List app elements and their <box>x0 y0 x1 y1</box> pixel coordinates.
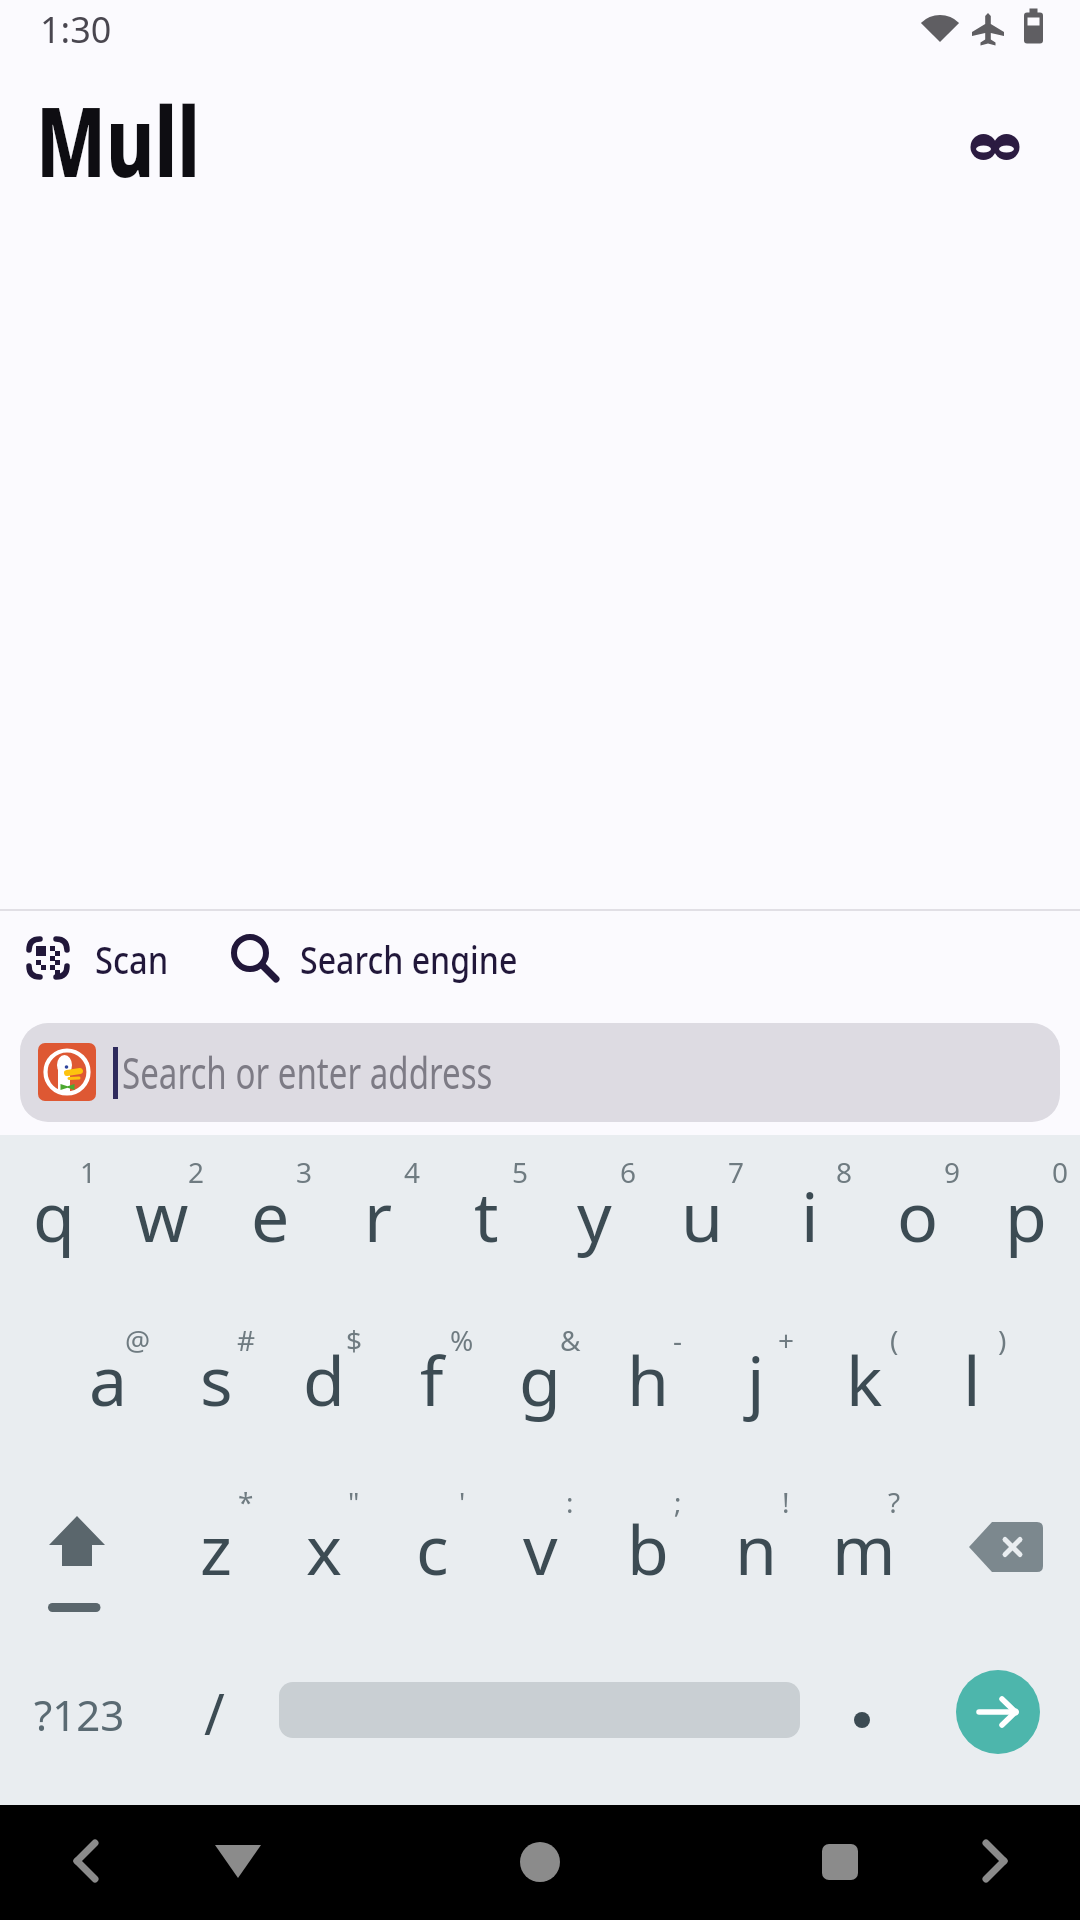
button[interactable] <box>955 1822 1035 1902</box>
staticText: % <box>450 1321 474 1359</box>
staticText: 3 <box>296 1153 313 1191</box>
button[interactable] <box>215 920 535 1000</box>
staticText: j <box>747 1333 765 1426</box>
staticText: & <box>560 1321 581 1359</box>
staticText: 8 <box>836 1153 853 1191</box>
staticText: " <box>348 1483 360 1521</box>
staticText: 9 <box>944 1153 961 1191</box>
staticText: o <box>897 1169 939 1262</box>
staticText: $ <box>346 1321 363 1359</box>
button[interactable]: y <box>540 1133 648 1297</box>
button[interactable]: ?123 <box>0 1654 159 1774</box>
staticText: r <box>364 1169 393 1262</box>
staticText: Mull <box>36 74 200 205</box>
staticText: z <box>200 1502 232 1595</box>
button[interactable]: f <box>378 1297 486 1461</box>
staticText: 1:30 <box>40 5 112 54</box>
button[interactable]: t <box>432 1133 540 1297</box>
staticText: u <box>681 1169 724 1262</box>
staticText: ' <box>459 1483 466 1521</box>
staticText: p <box>1005 1169 1047 1262</box>
button[interactable] <box>14 1472 149 1636</box>
staticText: t <box>474 1169 499 1262</box>
button[interactable]: g <box>486 1297 594 1461</box>
staticText: ( <box>890 1321 899 1359</box>
staticText: y <box>577 1169 612 1262</box>
staticText: f <box>420 1333 444 1426</box>
button[interactable]: l <box>918 1297 1026 1461</box>
button[interactable]: e <box>216 1133 324 1297</box>
button[interactable]: r <box>324 1133 432 1297</box>
staticText: Search engine <box>300 933 518 985</box>
button[interactable]: c <box>378 1466 486 1630</box>
staticText: # <box>237 1321 256 1359</box>
staticText: a <box>89 1333 128 1426</box>
button[interactable] <box>20 1023 1060 1122</box>
staticText: 5 <box>512 1153 529 1191</box>
staticText: b <box>627 1502 669 1595</box>
staticText: Search or enter address <box>122 1043 493 1102</box>
button[interactable]: k <box>810 1297 918 1461</box>
staticText: m <box>832 1502 896 1595</box>
button[interactable]: j <box>702 1297 810 1461</box>
button[interactable]: a <box>54 1297 162 1461</box>
staticText: i <box>801 1169 819 1262</box>
button[interactable]: d <box>270 1297 378 1461</box>
staticText: w <box>135 1169 189 1262</box>
button[interactable]: b <box>594 1466 702 1630</box>
button[interactable]: n <box>702 1466 810 1630</box>
staticText: @ <box>125 1321 151 1359</box>
staticText: : <box>566 1483 574 1521</box>
staticText: 4 <box>404 1153 421 1191</box>
staticText: * <box>238 1483 254 1521</box>
button[interactable] <box>808 1647 916 1777</box>
staticText: x <box>306 1502 342 1595</box>
button[interactable]: w <box>108 1133 216 1297</box>
staticText: 6 <box>620 1153 637 1191</box>
staticText: - <box>673 1321 683 1359</box>
button[interactable] <box>956 1670 1040 1754</box>
button[interactable]: m <box>810 1466 918 1630</box>
button[interactable]: o <box>864 1133 972 1297</box>
button[interactable] <box>960 117 1030 177</box>
staticText: ; <box>674 1483 682 1521</box>
staticText: d <box>303 1333 345 1426</box>
button[interactable]: h <box>594 1297 702 1461</box>
staticText: n <box>735 1502 778 1595</box>
button[interactable] <box>932 1472 1067 1636</box>
staticText: k <box>846 1333 883 1426</box>
button[interactable] <box>800 1822 880 1902</box>
staticText: h <box>627 1333 670 1426</box>
button[interactable] <box>198 1822 278 1902</box>
staticText: 7 <box>728 1153 745 1191</box>
button[interactable]: x <box>270 1466 378 1630</box>
button[interactable] <box>10 920 190 1000</box>
staticText: ) <box>998 1321 1007 1359</box>
staticText: + <box>778 1321 795 1359</box>
button[interactable]: z <box>162 1466 270 1630</box>
staticText: 2 <box>188 1153 205 1191</box>
staticText: s <box>200 1333 233 1426</box>
button[interactable]: u <box>648 1133 756 1297</box>
staticText: c <box>416 1502 449 1595</box>
staticText: ?123 <box>34 1686 125 1743</box>
staticText: l <box>963 1333 981 1426</box>
staticText: 1 <box>80 1153 97 1191</box>
button[interactable]: p <box>972 1133 1080 1297</box>
button[interactable]: v <box>486 1466 594 1630</box>
staticText: g <box>519 1333 561 1426</box>
staticText: v <box>523 1502 558 1595</box>
button[interactable]: q <box>0 1133 108 1297</box>
staticText: ? <box>888 1483 901 1521</box>
staticText: Scan <box>95 933 169 985</box>
button[interactable]: i <box>756 1133 864 1297</box>
button[interactable] <box>46 1822 126 1902</box>
staticText: ! <box>782 1483 790 1521</box>
staticText: e <box>251 1169 290 1262</box>
staticText: q <box>33 1169 75 1262</box>
button[interactable] <box>500 1822 580 1902</box>
button[interactable]: s <box>162 1297 270 1461</box>
staticText: 0 <box>1052 1153 1069 1191</box>
button[interactable]: / <box>159 1643 269 1783</box>
